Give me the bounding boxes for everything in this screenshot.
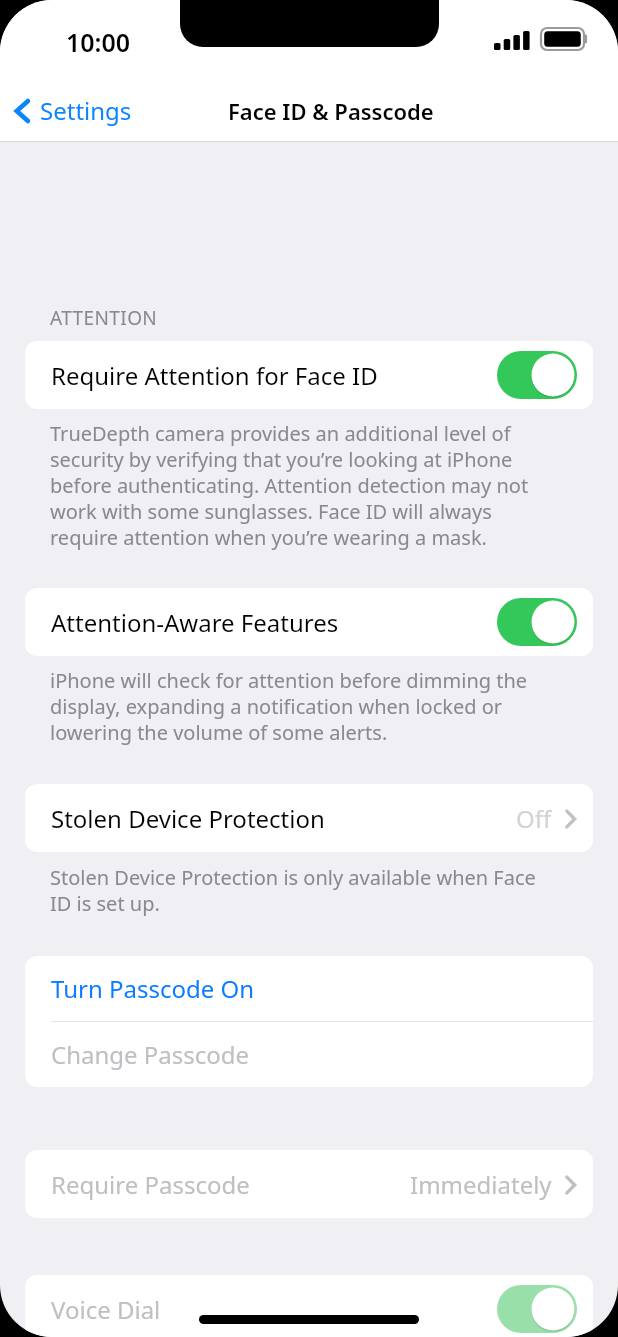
button[interactable]: Toggle xyxy=(497,351,577,399)
staticText: Require Attention for Face ID xyxy=(51,359,378,392)
button[interactable]: Require Attention for Face ID xyxy=(25,341,593,409)
staticText: Attention-Aware Features xyxy=(51,606,339,639)
staticText: Stolen Device Protection xyxy=(51,802,325,835)
staticText: Turn Passcode On xyxy=(51,972,255,1005)
button[interactable]: Change Passcode xyxy=(25,1022,593,1087)
button[interactable]: Toggle xyxy=(497,1285,577,1333)
staticText: Immediately xyxy=(410,1168,552,1201)
staticText: Voice Dial xyxy=(51,1293,161,1326)
button[interactable]: Voice Dial xyxy=(25,1275,593,1337)
staticText: 10:00 xyxy=(66,25,131,59)
button[interactable]: Require Passcode xyxy=(25,1150,593,1218)
staticText: Stolen Device Protection is only availab… xyxy=(50,864,550,917)
staticText: TrueDepth camera provides an additional … xyxy=(50,420,550,551)
staticText: Require Passcode xyxy=(51,1168,250,1201)
button[interactable]: Toggle xyxy=(497,598,577,646)
button[interactable]: Turn Passcode On xyxy=(25,956,593,1021)
staticText: Settings xyxy=(40,94,132,127)
staticText: iPhone will check for attention before d… xyxy=(50,667,550,746)
staticText: Face ID & Passcode xyxy=(228,96,434,126)
staticText: ATTENTION xyxy=(50,305,158,331)
button[interactable]: Attention-Aware Features xyxy=(25,588,593,656)
staticText: Change Passcode xyxy=(51,1038,250,1071)
button[interactable]: Settings xyxy=(0,88,142,133)
staticText: Off xyxy=(516,802,552,835)
button[interactable]: Stolen Device Protection xyxy=(25,784,593,852)
